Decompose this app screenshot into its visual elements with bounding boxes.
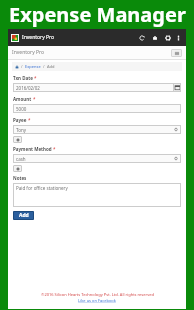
- staticText: 5000: [16, 106, 27, 112]
- staticText: Inventory Pro: [22, 34, 54, 41]
- staticText: Like us on Facebook: [78, 298, 116, 303]
- button[interactable]: Home: [148, 31, 161, 44]
- staticText: Payment Method: [13, 146, 52, 152]
- button[interactable]: Tony: [13, 125, 181, 134]
- staticText: *: [34, 75, 37, 81]
- staticText: Amount: [13, 96, 32, 102]
- staticText: Inventory Pro: [12, 49, 44, 56]
- button[interactable]: Refresh: [135, 31, 148, 44]
- button[interactable]: Paid for office stationery: [13, 183, 181, 207]
- button[interactable]: Menu: [171, 49, 182, 57]
- staticText: Txn Date: [13, 75, 33, 81]
- button[interactable]: 5000: [13, 104, 181, 113]
- button[interactable]: Add payee: [13, 136, 22, 143]
- button[interactable]: More options: [174, 31, 183, 44]
- staticText: Payee: [13, 117, 27, 123]
- button[interactable]: Add payment method: [13, 165, 22, 172]
- staticText: *: [53, 146, 56, 152]
- staticText: Add: [47, 64, 55, 69]
- staticText: Expense Manager: [9, 1, 186, 28]
- button[interactable]: Add: [13, 211, 34, 220]
- staticText: /: [43, 64, 45, 69]
- staticText: Notes: [13, 175, 27, 181]
- staticText: Paid for office stationery: [16, 185, 68, 191]
- button[interactable]: Like us on Facebook: [78, 298, 116, 303]
- staticText: *: [28, 117, 31, 123]
- button[interactable]: Pick date: [173, 83, 181, 92]
- staticText: Tony: [16, 127, 26, 133]
- staticText: /: [21, 64, 23, 69]
- staticText: Add: [19, 212, 29, 219]
- button[interactable]: Settings: [161, 31, 174, 44]
- button[interactable]: /: [15, 62, 179, 71]
- button[interactable]: 2016/02/02: [13, 83, 181, 92]
- staticText: cash: [16, 156, 26, 162]
- button[interactable]: cash: [13, 154, 181, 163]
- staticText: *: [33, 96, 36, 102]
- staticText: Expense: [25, 64, 41, 69]
- staticText: ©2016 Silicon Hearts Technology Pvt. Ltd…: [41, 292, 154, 297]
- staticText: 2016/02/02: [16, 85, 40, 91]
